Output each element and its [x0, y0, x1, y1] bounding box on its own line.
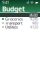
- staticText: Utilities: [5, 24, 18, 30]
- staticText: $120: [30, 24, 38, 30]
- staticText: Transport: [5, 20, 22, 26]
- staticText: Budget: [2, 5, 25, 13]
- staticText: Groceries: [5, 16, 23, 22]
- staticText: $240: [30, 16, 38, 22]
- staticText: $80: [32, 20, 38, 26]
- staticText: Add: [30, 12, 37, 18]
- staticText: 9:41: [2, 0, 9, 5]
- staticText: ·ıl ᯤ ▰: [26, 0, 38, 5]
